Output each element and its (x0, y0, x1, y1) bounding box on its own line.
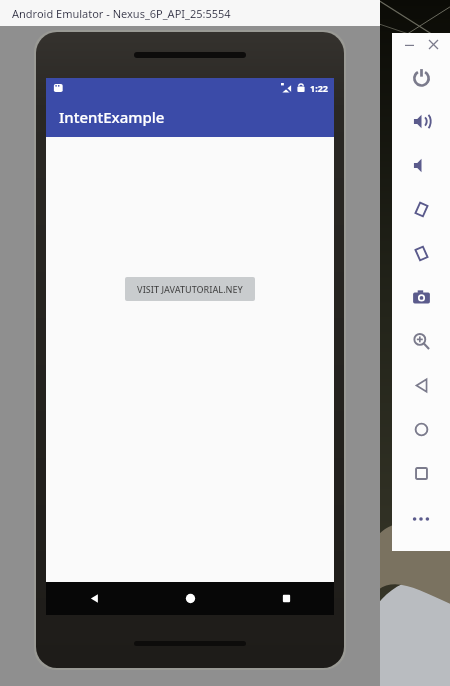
button[interactable]: Rotate left (399, 187, 443, 231)
staticText: VISIT JAVATUTORIAL.NEY (137, 283, 243, 295)
button[interactable]: More (404, 509, 438, 529)
staticText: 1:22 (310, 82, 328, 94)
button[interactable]: Minimize (401, 36, 417, 52)
button[interactable]: VISIT JAVATUTORIAL.NEY (125, 277, 255, 301)
button[interactable]: Back (46, 582, 142, 615)
button[interactable]: Back (399, 363, 443, 407)
button[interactable]: Overview (399, 451, 443, 495)
button[interactable]: Rotate right (399, 231, 443, 275)
button[interactable]: Zoom (399, 319, 443, 363)
button[interactable]: Volume down (399, 143, 443, 187)
button[interactable]: Power (399, 55, 443, 99)
button[interactable]: Home (142, 582, 238, 615)
button[interactable]: Recent apps (238, 582, 334, 615)
button[interactable]: Home (399, 407, 443, 451)
staticText: Android Emulator - Nexus_6P_API_25:5554 (12, 6, 231, 21)
button[interactable]: Close (425, 36, 441, 52)
button[interactable]: Volume up (399, 99, 443, 143)
staticText: IntentExample (59, 107, 165, 127)
button[interactable]: Take screenshot (399, 275, 443, 319)
